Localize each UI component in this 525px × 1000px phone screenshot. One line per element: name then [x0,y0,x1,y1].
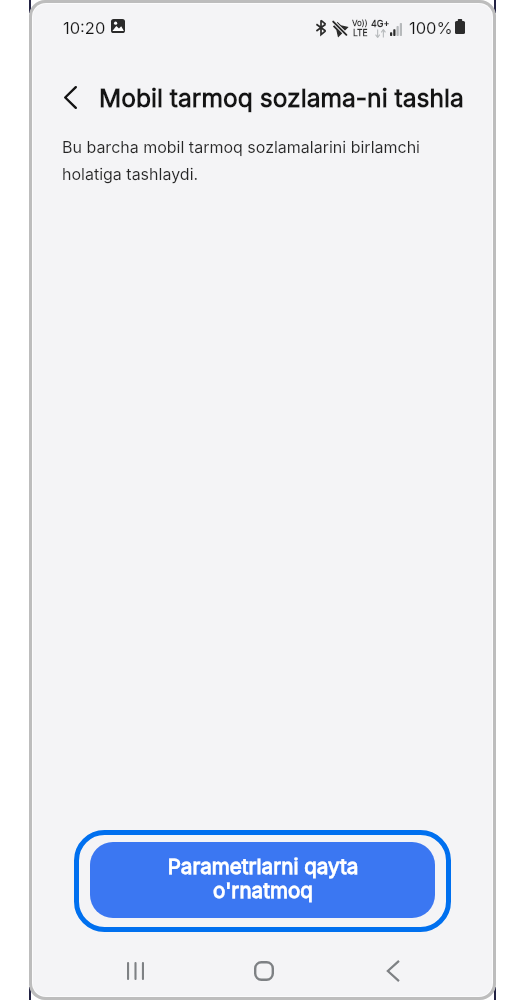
staticText: 10:20 [63,18,106,38]
staticText: Parametrlarni qayta o'rnatmoq [143,854,383,903]
button[interactable]: Back [354,947,432,994]
button[interactable]: Back [48,75,92,119]
staticText: 4G+ [371,18,390,29]
button[interactable]: Home [225,947,303,994]
staticText: 100% [409,18,453,38]
staticText: Bu barcha mobil tarmoq sozlamalarini bir… [62,137,460,184]
staticText: LTE [353,28,368,38]
staticText: Mobil tarmoq sozlama-ni tashla [99,83,464,113]
button[interactable]: Recent apps [96,947,174,994]
staticText: Vo)) [352,18,368,28]
button[interactable]: Parametrlarni qayta o'rnatmoq [74,830,451,932]
